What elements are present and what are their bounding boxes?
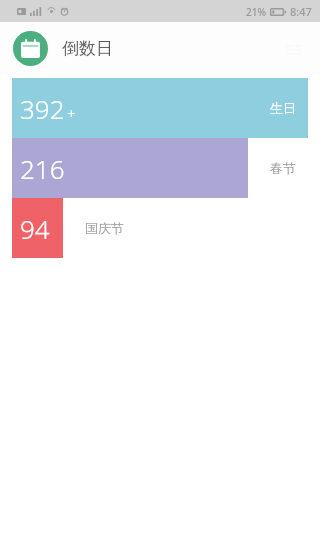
staticText: 216	[20, 151, 65, 186]
staticText: 21%	[246, 5, 266, 19]
staticText: 392	[20, 91, 65, 126]
button[interactable]: 392	[0, 78, 320, 138]
button[interactable]: Countdown app icon	[13, 31, 48, 66]
staticText: 8:47	[290, 4, 312, 19]
staticText: 94	[20, 211, 50, 246]
staticText: 生日	[270, 100, 296, 116]
button[interactable]: 94	[0, 198, 320, 258]
staticText: +	[67, 103, 76, 123]
staticText: 国庆节	[85, 220, 124, 236]
button[interactable]: 216	[0, 138, 320, 198]
staticText: 倒数日	[62, 38, 113, 59]
staticText: 春节	[270, 160, 296, 176]
